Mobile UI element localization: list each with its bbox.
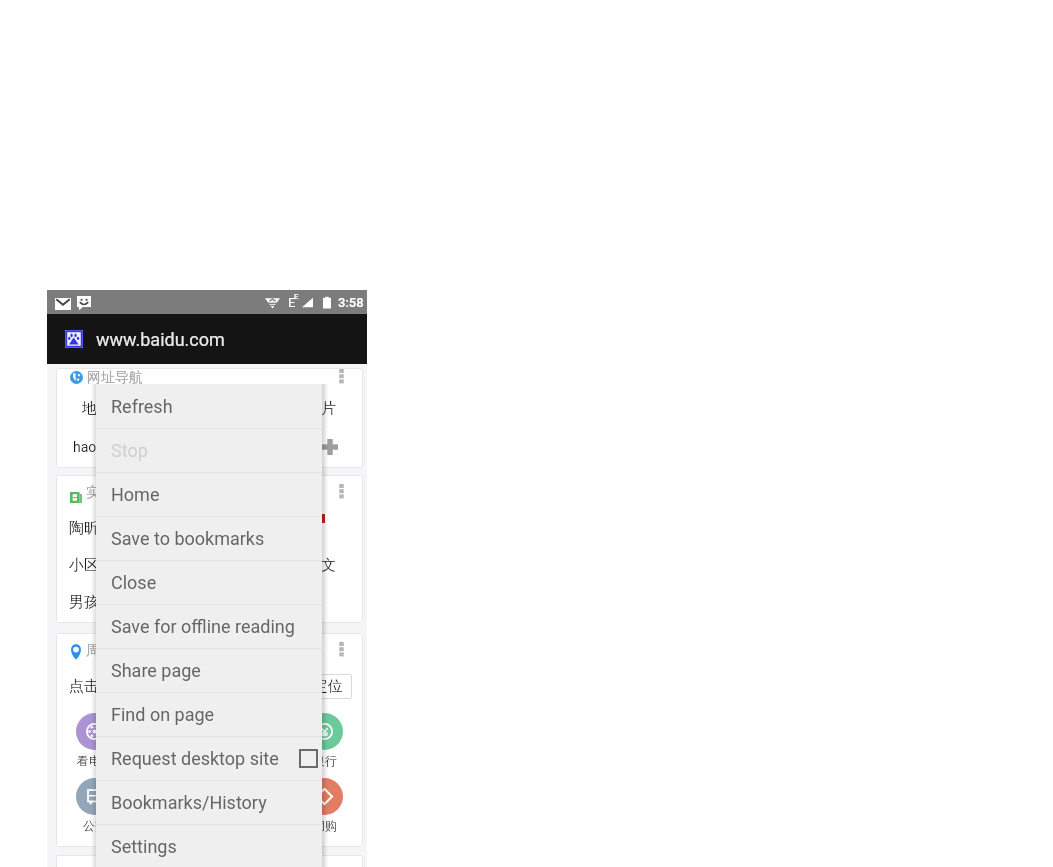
staticText: 男孩踢球受伤索赔 [69, 593, 189, 612]
button[interactable]: 地图 [82, 399, 112, 418]
staticText: Save for offline reading [111, 616, 295, 637]
staticText: Request desktop site [111, 748, 279, 769]
button[interactable]: 定位 [304, 674, 352, 699]
button[interactable]: 男孩踢球受伤索赔 [56, 584, 363, 621]
button[interactable]: 打车 [191, 778, 228, 833]
button[interactable]: 看电影 [76, 713, 113, 768]
staticText: 网址导航 [87, 369, 143, 387]
button[interactable]: Save to bookmarks [96, 517, 322, 560]
staticText: 团购 [313, 818, 337, 833]
staticText: E [288, 295, 296, 310]
button[interactable]: 公交 [76, 778, 113, 833]
button[interactable]: More options [332, 642, 350, 660]
button[interactable]: Settings [96, 825, 322, 867]
button[interactable]: Find on page [96, 693, 322, 736]
staticText: 公交 [83, 818, 107, 833]
staticText: 看电影 [77, 753, 113, 768]
staticText: Stop [111, 440, 148, 461]
button[interactable]: Home [96, 473, 322, 516]
button[interactable]: Save for offline reading [96, 605, 322, 648]
button[interactable]: 银行 [306, 713, 343, 768]
staticText: Save to bookmarks [111, 528, 265, 549]
button[interactable]: Share page [96, 649, 322, 692]
button[interactable]: Refresh [96, 384, 322, 428]
staticText: 点击定位查看周边 [69, 677, 189, 696]
button[interactable]: 团购 [306, 778, 343, 833]
button[interactable]: 陶昕然回应热议 [56, 510, 363, 547]
staticText: 实时热点 [86, 484, 142, 502]
staticText: 陶昕然回应热议 [69, 519, 174, 538]
staticText: Bookmarks/History [111, 792, 267, 813]
staticText: 美食 [198, 753, 222, 768]
button[interactable]: www.baidu.com [47, 314, 367, 364]
button[interactable]: Request desktop site [96, 737, 322, 780]
staticText: Refresh [111, 396, 173, 417]
staticText: 定位 [313, 677, 343, 696]
staticText: Share page [111, 660, 201, 681]
staticText: Close [111, 572, 157, 593]
staticText: Home [111, 484, 160, 505]
staticText: 文 [321, 556, 336, 575]
button[interactable]: 图片 [306, 399, 336, 418]
button[interactable]: hao123 [73, 439, 120, 455]
staticText: 银行 [313, 753, 337, 768]
staticText: Settings [111, 836, 177, 857]
button[interactable]: Add shortcut [322, 439, 338, 455]
staticText: 周边 [86, 642, 114, 660]
button[interactable]: Close [96, 561, 322, 604]
button[interactable]: Bookmarks/History [96, 781, 322, 824]
button[interactable]: 小区业主维权 [56, 547, 363, 584]
button[interactable]: Stop [96, 429, 322, 472]
button[interactable]: More options [332, 484, 350, 502]
staticText: 3:58 [338, 295, 364, 310]
staticText: Find on page [111, 704, 215, 725]
button[interactable]: 美食 [191, 713, 228, 768]
button[interactable]: More options [332, 369, 350, 387]
staticText: www.baidu.com [96, 329, 225, 350]
staticText: 小区业主维权 [69, 556, 159, 575]
staticText: E [294, 292, 299, 301]
